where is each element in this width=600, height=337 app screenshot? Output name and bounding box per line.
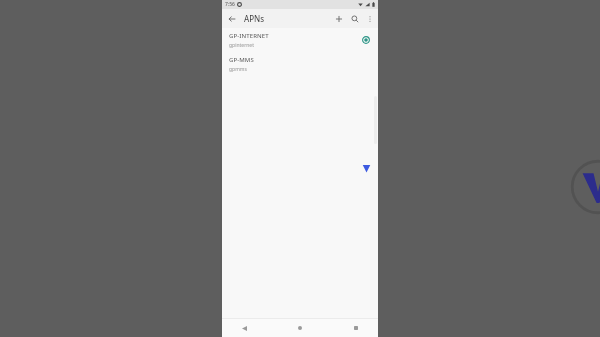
- button[interactable]: Home: [292, 320, 308, 336]
- button[interactable]: Add APN: [331, 11, 347, 27]
- button[interactable]: GP-INTERNET: [222, 28, 378, 52]
- staticText: APNs: [244, 13, 265, 24]
- button[interactable]: More options: [363, 12, 377, 26]
- staticText: gpmms: [229, 66, 247, 73]
- button[interactable]: Recent apps: [348, 320, 364, 336]
- button[interactable]: Search: [347, 11, 363, 27]
- button[interactable]: Selected APN: [359, 33, 373, 47]
- staticText: GP-MMS: [229, 56, 254, 64]
- button[interactable]: Back: [224, 11, 240, 27]
- button[interactable]: Back: [236, 320, 252, 336]
- staticText: GP-INTERNET: [229, 32, 269, 40]
- staticText: 7:56: [225, 1, 235, 8]
- button[interactable]: GP-MMS: [222, 52, 378, 76]
- staticText: gpinternet: [229, 42, 254, 49]
